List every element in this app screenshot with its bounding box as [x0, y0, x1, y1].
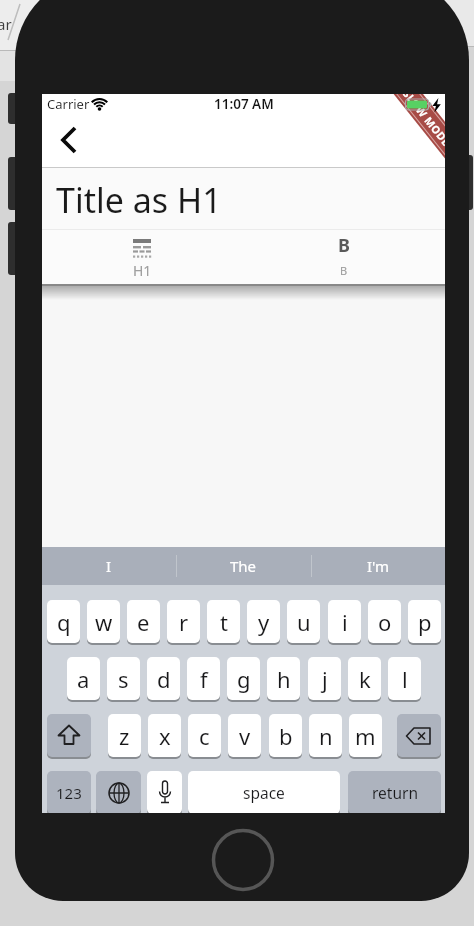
button[interactable]: n	[309, 714, 342, 757]
staticText: w	[95, 607, 113, 637]
button[interactable]: The	[176, 547, 311, 585]
staticText: I'm	[367, 556, 390, 576]
button[interactable]: o	[368, 600, 401, 643]
staticText: x	[159, 721, 171, 751]
button[interactable]	[52, 120, 86, 160]
button[interactable]: x	[148, 714, 181, 757]
staticText: i	[342, 607, 348, 637]
button[interactable]: g	[227, 657, 260, 700]
button[interactable]: w	[87, 600, 120, 643]
staticText: p	[418, 607, 432, 637]
button[interactable]: i	[328, 600, 361, 643]
staticText: e	[137, 607, 150, 637]
button[interactable]	[47, 714, 91, 757]
staticText: y	[258, 607, 270, 637]
staticText: 11:07 AM	[214, 95, 274, 113]
button[interactable]: H1	[102, 230, 182, 284]
staticText: l	[402, 664, 408, 694]
staticText: space	[243, 782, 285, 803]
button[interactable]: I	[42, 547, 176, 585]
staticText: z	[119, 721, 130, 751]
staticText: h	[277, 664, 291, 694]
staticText: Title as H1	[56, 177, 222, 223]
staticText: 123	[56, 783, 82, 803]
button[interactable]: k	[348, 657, 381, 700]
button[interactable]: t	[207, 600, 240, 643]
staticText: return	[372, 782, 418, 803]
staticText: n	[319, 721, 333, 751]
staticText: f	[200, 664, 208, 694]
button[interactable]: B	[304, 230, 384, 284]
staticText: d	[157, 664, 171, 694]
button[interactable]: h	[267, 657, 300, 700]
staticText: q	[57, 607, 71, 637]
button[interactable]: space	[188, 771, 340, 813]
button[interactable]	[147, 771, 182, 813]
staticText: u	[297, 607, 311, 637]
button[interactable]: v	[228, 714, 261, 757]
button[interactable]: q	[47, 600, 80, 643]
button[interactable]: return	[348, 771, 441, 813]
button[interactable]: r	[167, 600, 200, 643]
staticText: c	[199, 721, 210, 751]
button[interactable]: b	[269, 714, 302, 757]
staticText: o	[378, 607, 392, 637]
button[interactable]: a	[67, 657, 100, 700]
button[interactable]: c	[188, 714, 221, 757]
staticText: m	[355, 721, 376, 751]
staticText: r	[179, 607, 189, 637]
button[interactable]: y	[247, 600, 280, 643]
button[interactable]: l	[388, 657, 421, 700]
button[interactable]: d	[147, 657, 180, 700]
staticText: b	[279, 721, 293, 751]
button[interactable]: j	[308, 657, 341, 700]
button[interactable]: m	[349, 714, 382, 757]
button[interactable]: 123	[47, 771, 91, 813]
button[interactable]: z	[108, 714, 141, 757]
staticText: k	[359, 664, 371, 694]
staticText: j	[322, 664, 328, 694]
staticText: t	[220, 607, 228, 637]
button[interactable]: u	[287, 600, 320, 643]
staticText: SLOW MODE	[400, 94, 445, 149]
staticText: s	[118, 664, 129, 694]
button[interactable]: f	[187, 657, 220, 700]
staticText: v	[239, 721, 251, 751]
staticText: ar	[0, 14, 12, 34]
staticText: The	[230, 556, 257, 576]
button[interactable]	[96, 771, 141, 813]
staticText: H1	[133, 261, 152, 280]
staticText: I	[106, 556, 112, 576]
button[interactable]: e	[127, 600, 160, 643]
button[interactable]: p	[408, 600, 441, 643]
staticText: a	[77, 664, 90, 694]
button[interactable]	[397, 714, 441, 757]
staticText: B	[340, 263, 348, 278]
button[interactable]: I'm	[311, 547, 445, 585]
staticText: Carrier	[47, 95, 90, 113]
staticText: g	[237, 664, 251, 694]
button[interactable]: s	[107, 657, 140, 700]
staticText: B	[338, 233, 350, 258]
